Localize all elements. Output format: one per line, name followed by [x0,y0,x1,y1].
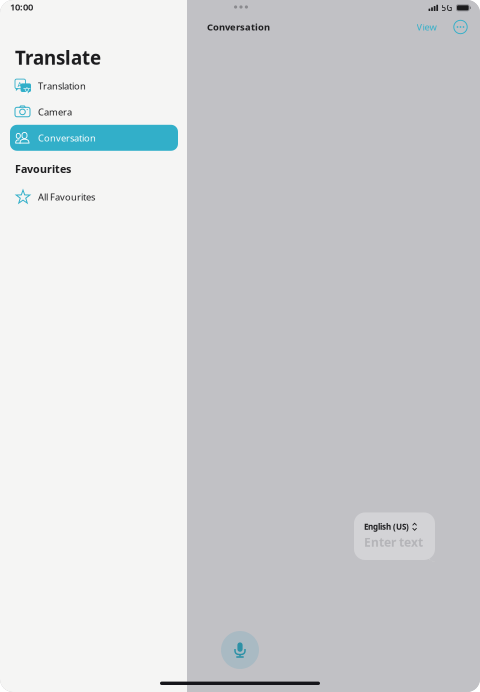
staticText: 5G [442,2,453,13]
button[interactable]: View [413,17,439,37]
staticText: English (US) [364,521,409,532]
staticText: Favourites [15,162,71,176]
button[interactable]: All Favourites [0,184,187,210]
staticText: A [17,80,21,89]
staticText: All Favourites [38,191,95,203]
staticText: View [416,21,436,33]
staticText: Translate [15,45,101,70]
staticText: Enter text [364,534,423,550]
button[interactable]: English (US) [354,512,435,560]
button[interactable]: Conversation [0,125,187,151]
button[interactable]: Record [221,631,259,669]
staticText: Conversation [207,21,270,33]
staticText: Conversation [38,132,96,144]
button[interactable]: More options [451,16,469,38]
staticText: 文 [23,85,31,96]
staticText: Translation [38,80,86,92]
button[interactable]: A [0,73,187,99]
button[interactable]: Camera [0,99,187,125]
staticText: 10:00 [10,1,33,13]
staticText: Camera [38,106,72,118]
